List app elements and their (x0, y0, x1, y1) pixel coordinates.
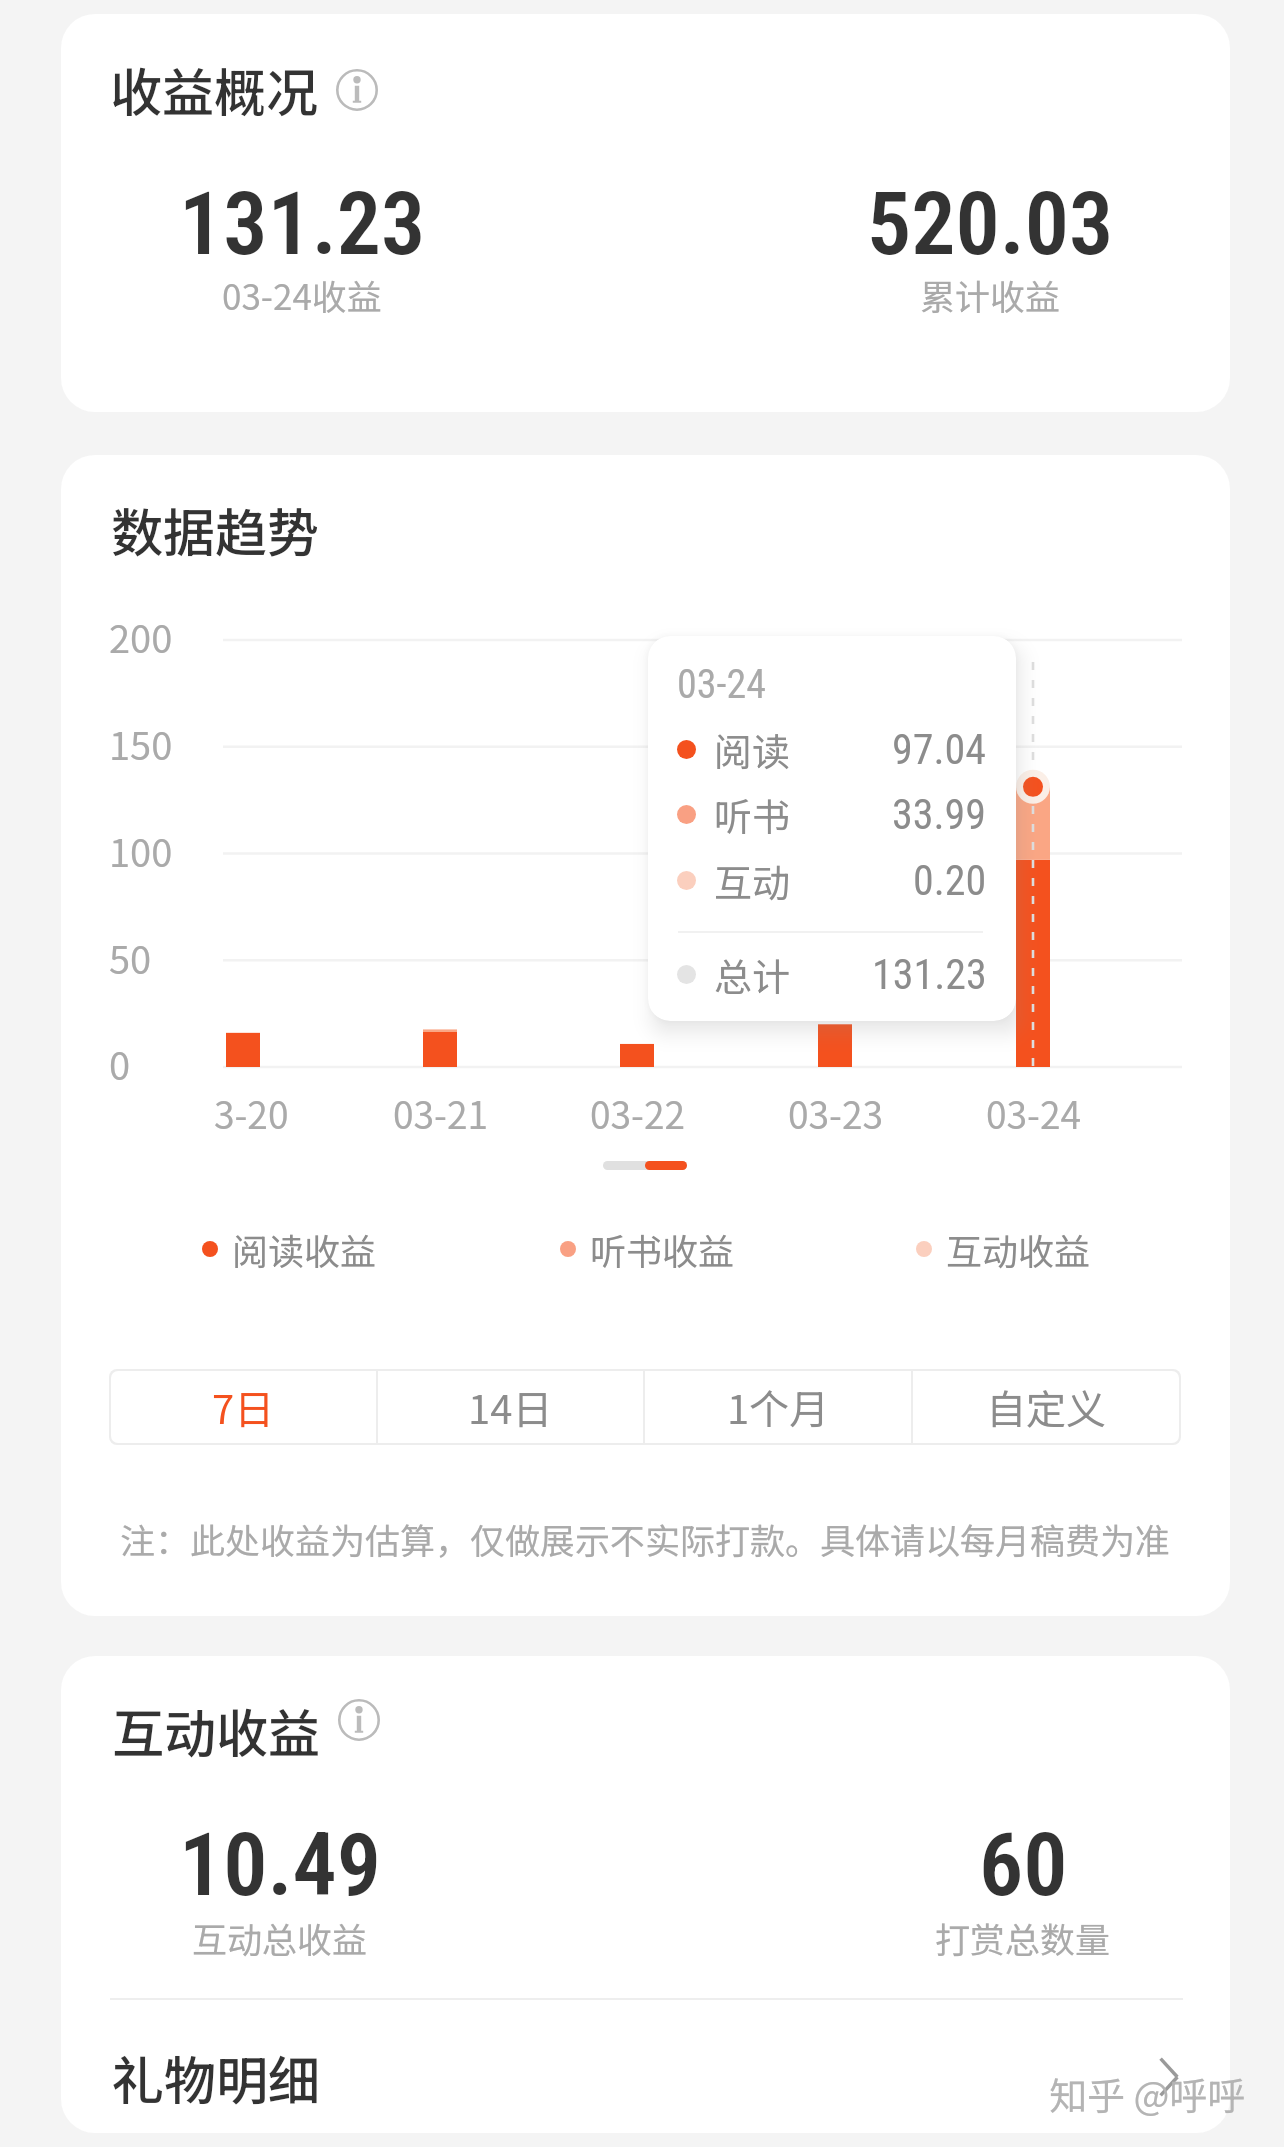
other: Open gift details (1148, 2056, 1190, 2098)
staticText: 03-24收益 (222, 269, 382, 320)
staticText: 阅读收益 (232, 1223, 377, 1275)
staticText: 1个月 (727, 1378, 830, 1436)
staticText: 累计收益 (920, 269, 1061, 320)
staticText: 60 (979, 1813, 1068, 1916)
staticText: 注：此处收益为估算，仅做展示不实际打款。具体请以每月稿费为准 (120, 1513, 1171, 1564)
staticText: 阅读 (714, 722, 791, 777)
staticText: 听书收益 (590, 1223, 735, 1275)
button[interactable]: 1个月 (645, 1371, 911, 1443)
button[interactable]: Info (338, 1699, 380, 1741)
staticText: 03-24 (677, 661, 766, 708)
staticText: 150 (109, 716, 173, 771)
staticText: 520.03 (867, 172, 1114, 275)
staticText: 收益概况 (110, 52, 319, 127)
staticText: 03-21 (393, 1086, 488, 1140)
staticText: 14日 (468, 1378, 553, 1436)
staticText: 200 (109, 609, 173, 664)
staticText: 互动 (714, 853, 791, 908)
staticText: 礼物明细 (112, 2040, 321, 2115)
button[interactable]: 7日 (111, 1371, 376, 1443)
staticText: 03-23 (788, 1086, 883, 1140)
staticText: 自定义 (986, 1378, 1106, 1436)
button[interactable]: Info (336, 69, 378, 111)
staticText: 10.49 (179, 1813, 382, 1916)
staticText: 7日 (212, 1378, 275, 1436)
staticText: 0 (109, 1036, 131, 1091)
staticText: 33.99 (892, 790, 987, 839)
staticText: 0.20 (913, 856, 987, 905)
button[interactable]: 礼物明细 (61, 2017, 1230, 2133)
staticText: 131.23 (872, 950, 987, 999)
staticText: 50 (109, 930, 152, 985)
staticText: 03-24 (986, 1086, 1081, 1140)
staticText: 总计 (714, 947, 791, 1002)
staticText: 03-22 (590, 1086, 685, 1140)
staticText: 3-20 (214, 1086, 289, 1140)
staticText: 131.23 (179, 172, 426, 275)
staticText: 数据趋势 (111, 492, 320, 567)
staticText: 互动收益 (946, 1223, 1091, 1275)
staticText: 知乎 @呼呼 (1049, 2066, 1246, 2121)
staticText: 100 (109, 823, 173, 878)
button[interactable]: 14日 (378, 1371, 643, 1443)
staticText: 听书 (714, 787, 791, 842)
staticText: 互动收益 (112, 1693, 321, 1768)
staticText: 打赏总数量 (935, 1912, 1111, 1963)
button[interactable]: 自定义 (913, 1371, 1179, 1443)
staticText: 97.04 (892, 725, 987, 774)
staticText: 互动总收益 (192, 1912, 368, 1963)
